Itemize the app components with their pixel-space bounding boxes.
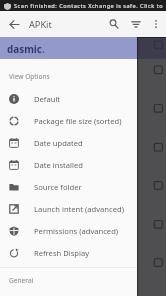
button[interactable]: Date updated xyxy=(0,132,166,154)
button[interactable]: Package file size (sorted) xyxy=(0,110,166,132)
staticText: dasmic xyxy=(7,42,42,55)
staticText: Date installed xyxy=(34,160,83,170)
staticText: Date updated xyxy=(34,138,83,148)
button[interactable]: Search xyxy=(103,11,125,37)
button[interactable]: Refresh Display xyxy=(0,242,166,264)
staticText: General xyxy=(9,276,34,285)
button[interactable]: Filter xyxy=(125,11,146,37)
staticText: APKit xyxy=(29,18,52,31)
staticText: Source folder xyxy=(34,182,82,192)
button[interactable]: Back xyxy=(0,11,28,37)
button[interactable]: Launch intent (advanced) xyxy=(0,198,166,220)
button[interactable]: More options xyxy=(146,11,166,37)
button[interactable]: Permissions (advanced) xyxy=(0,220,166,242)
button[interactable]: Source folder xyxy=(0,176,166,198)
staticText: View Options xyxy=(9,72,50,81)
staticText: Launch intent (advanced) xyxy=(34,204,124,214)
button[interactable]: Date installed xyxy=(0,154,166,176)
staticText: Refresh Display xyxy=(34,248,90,258)
staticText: Scan finished: Contacts Xchange is safe.… xyxy=(14,2,164,10)
button[interactable]: Default xyxy=(0,88,166,110)
staticText: Permissions (advanced) xyxy=(34,226,119,236)
staticText: Default xyxy=(34,94,61,104)
staticText: . xyxy=(42,42,45,55)
staticText: Package file size (sorted) xyxy=(34,116,122,126)
